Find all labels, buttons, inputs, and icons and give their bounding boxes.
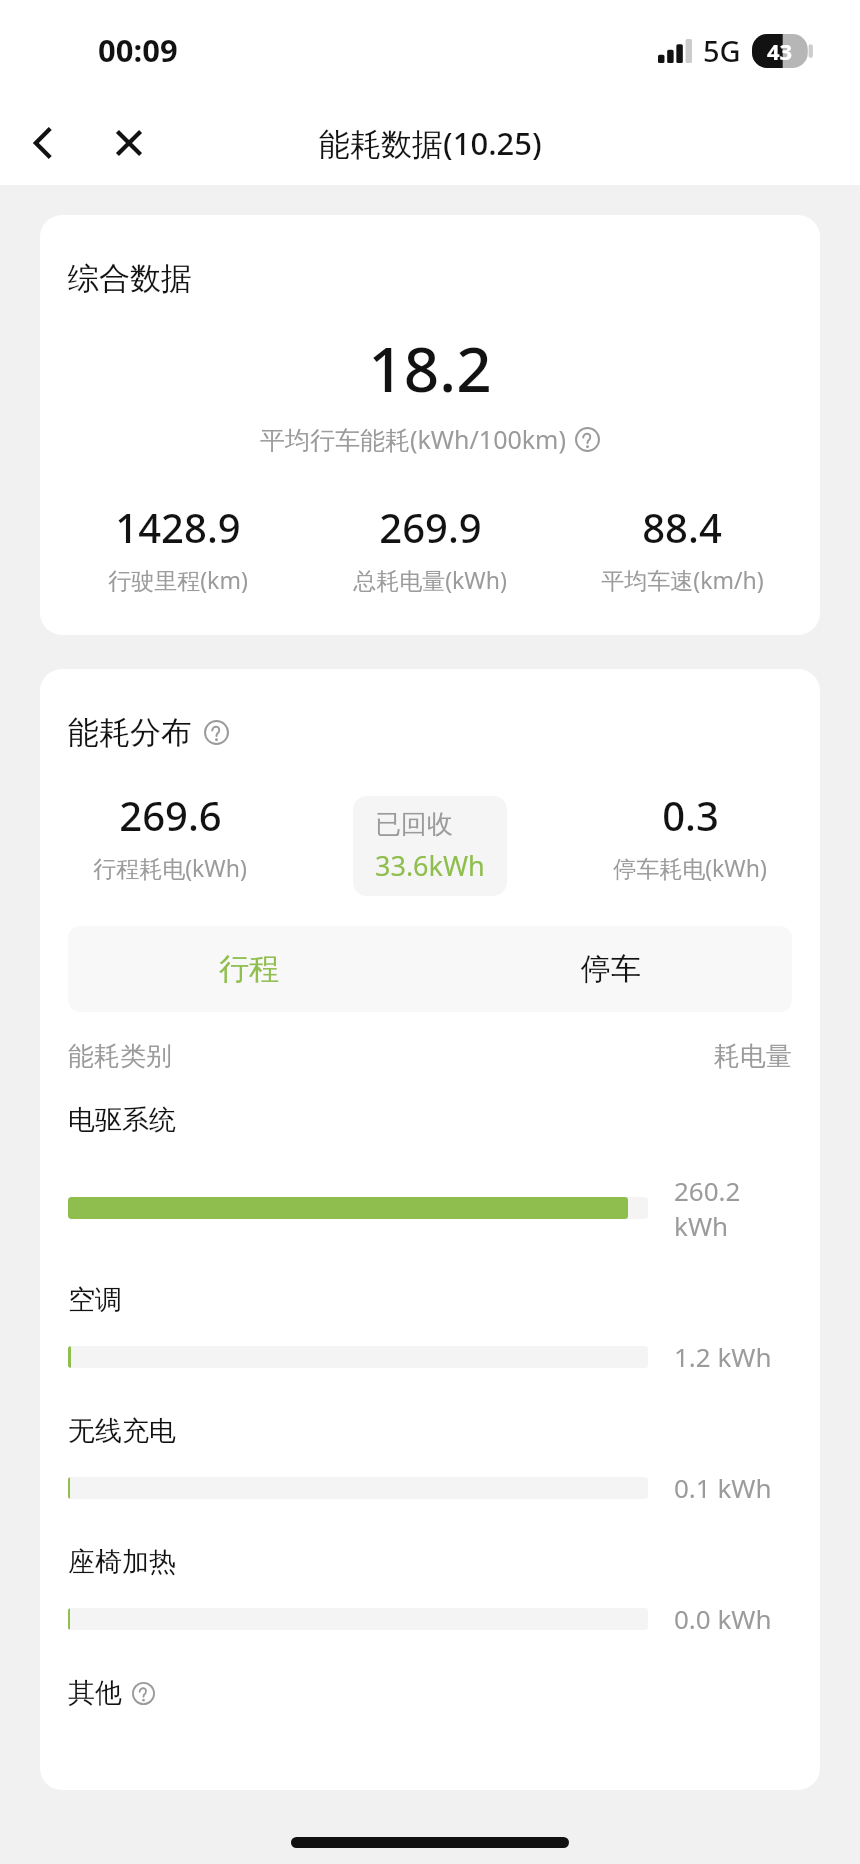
staticText: 18.2 [40, 326, 820, 410]
staticText: 能耗分布 [68, 713, 192, 752]
staticText: 耗电量 [714, 1040, 792, 1073]
staticText: 行驶里程(km) [108, 564, 248, 595]
staticText: 0.3 [662, 788, 719, 842]
staticText: 33.6kWh [375, 847, 485, 884]
staticText: 269.6 [119, 788, 222, 842]
staticText: 停车 [581, 950, 641, 988]
staticText: 无线充电 [68, 1414, 176, 1448]
staticText: 0.1 kWh [674, 1470, 772, 1505]
staticText: 电驱系统 [68, 1103, 176, 1137]
staticText: 其他 [68, 1676, 122, 1710]
staticText: 总耗电量(kWh) [353, 564, 507, 595]
staticText: 能耗类别 [68, 1040, 172, 1073]
staticText: 行程耗电(kWh) [93, 852, 247, 883]
staticText: 00:09 [98, 29, 178, 71]
staticText: 空调 [68, 1283, 122, 1317]
staticText: 269.9 [379, 500, 482, 554]
button[interactable]: 停车 [430, 926, 792, 1012]
staticText: 43 [767, 36, 793, 66]
staticText: 5G [703, 31, 741, 70]
staticText: 0.0 kWh [674, 1601, 772, 1636]
staticText: 已回收 [375, 808, 453, 841]
staticText: 平均行车能耗(kWh/100km) [260, 422, 566, 456]
staticText: 88.4 [642, 500, 722, 554]
staticText: 行程 [219, 950, 279, 988]
staticText: 平均车速(km/h) [601, 564, 764, 595]
button[interactable]: Close [86, 100, 172, 185]
staticText: 1.2 kWh [674, 1339, 772, 1374]
staticText: 停车耗电(kWh) [613, 852, 767, 883]
staticText: 能耗数据(10.25) [319, 122, 542, 164]
staticText: 座椅加热 [68, 1545, 176, 1579]
button[interactable]: Back [0, 100, 86, 185]
button[interactable]: 行程 [68, 926, 430, 1012]
staticText: 综合数据 [68, 259, 192, 298]
staticText: 1428.9 [115, 500, 241, 554]
staticText: 260.2 kWh [674, 1173, 741, 1243]
